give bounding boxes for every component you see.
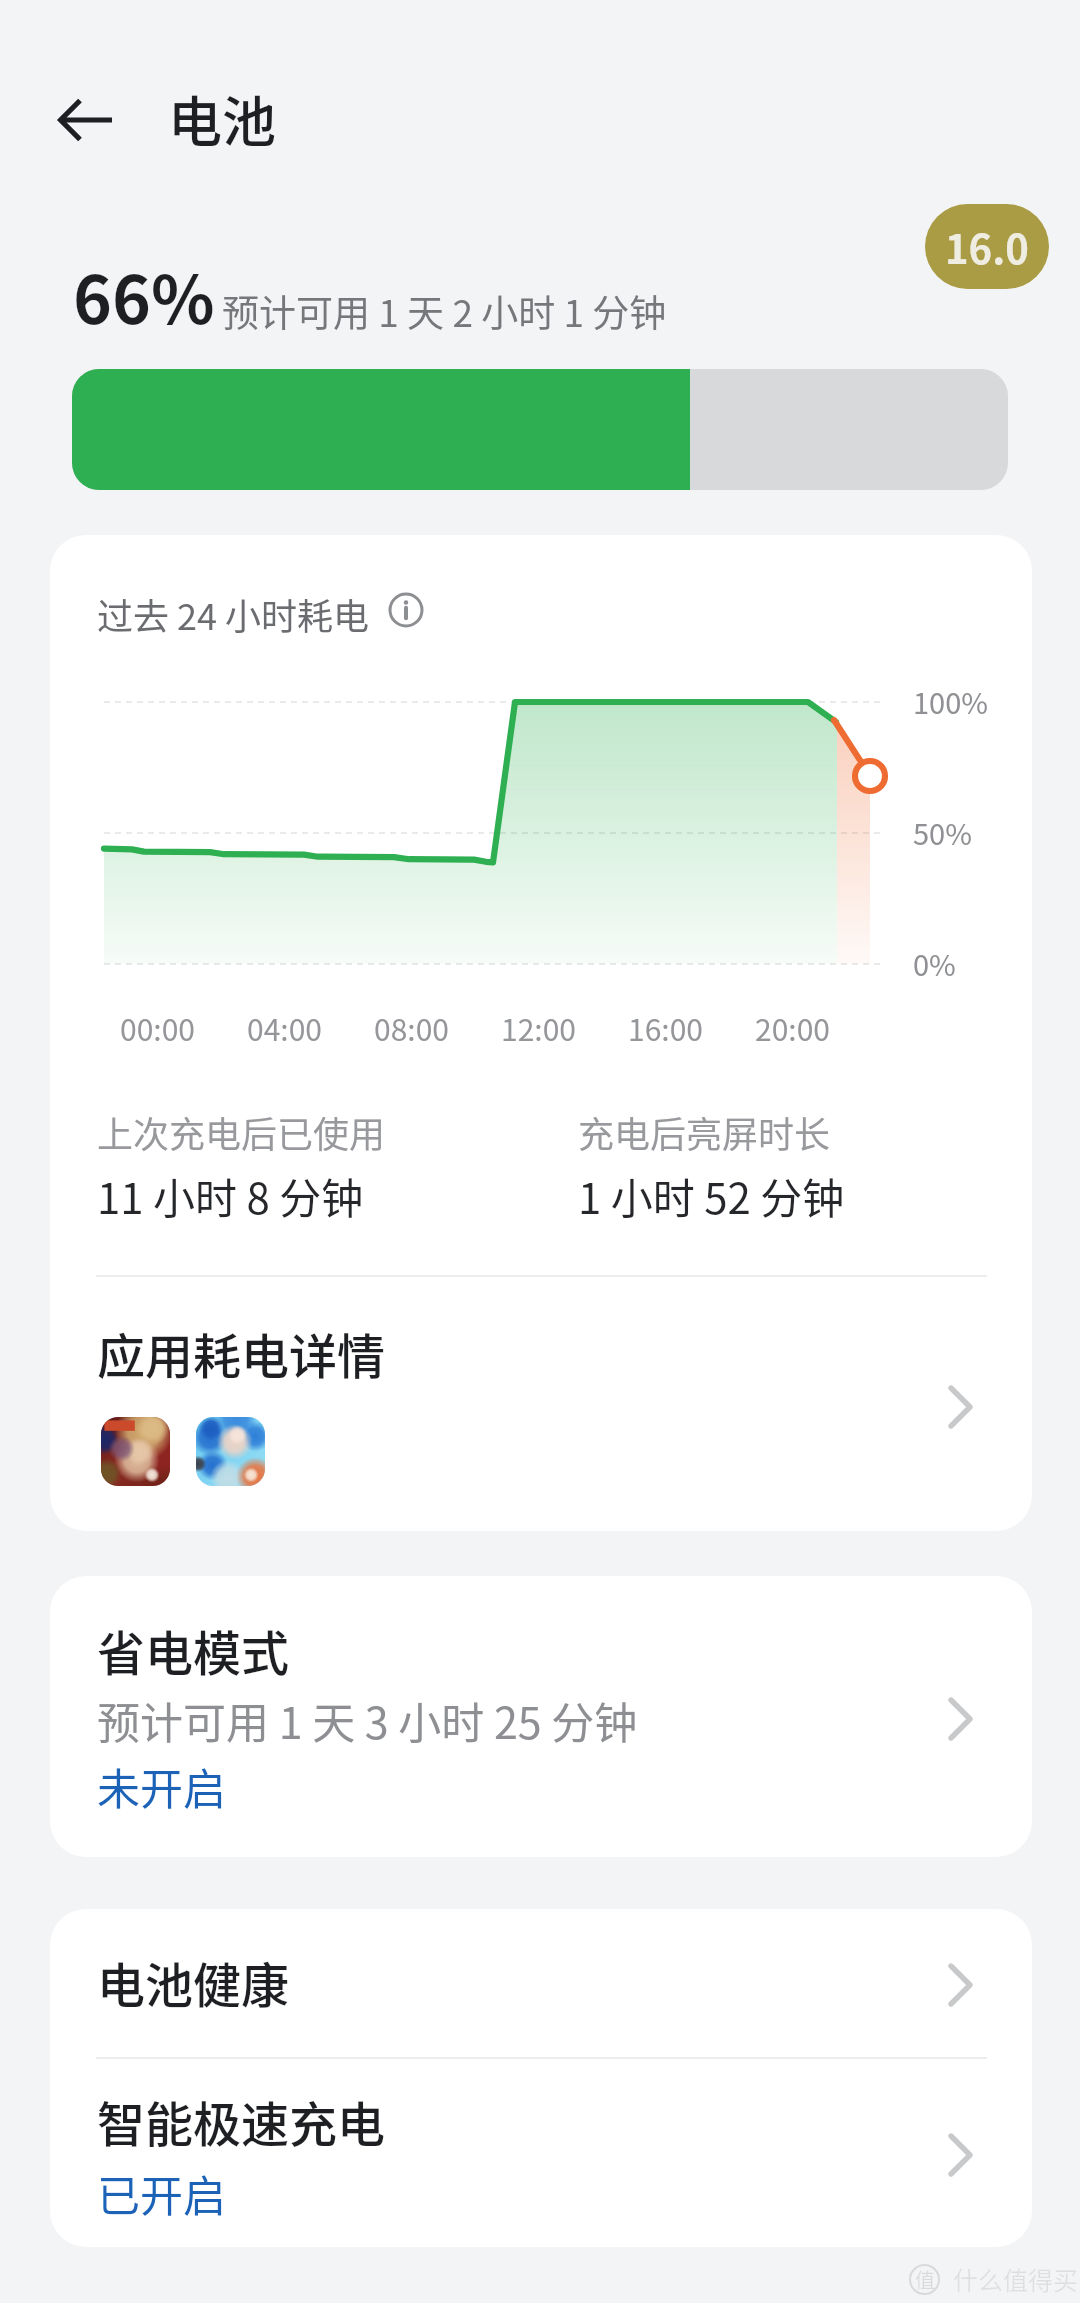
staticText: 电池 bbox=[168, 79, 276, 157]
staticText: 电池健康 bbox=[97, 1947, 290, 2017]
button[interactable]: 16.0 bbox=[925, 204, 1049, 289]
staticText: 11 小时 8 分钟 bbox=[97, 1165, 364, 1226]
staticText: 应用耗电详情 bbox=[97, 1318, 386, 1388]
staticText: 20:00 bbox=[755, 1006, 830, 1049]
staticText: 未开启 bbox=[97, 1755, 226, 1817]
staticText: 1 小时 52 分钟 bbox=[578, 1165, 845, 1226]
staticText: 0% bbox=[913, 942, 956, 984]
staticText: 00:00 bbox=[120, 1006, 195, 1049]
button[interactable]: 电池健康 bbox=[50, 1909, 1032, 2057]
staticText: 什么值得买 bbox=[953, 2261, 1079, 2297]
button[interactable]: 智能极速充电 bbox=[50, 2059, 1032, 2247]
staticText: 充电后亮屏时长 bbox=[578, 1106, 831, 1158]
staticText: 16.0 bbox=[945, 218, 1029, 276]
staticText: 50% bbox=[913, 811, 972, 853]
staticText: 100% bbox=[913, 680, 988, 722]
staticText: 省电模式 bbox=[97, 1615, 290, 1685]
staticText: 66% bbox=[73, 247, 215, 343]
button[interactable]: 省电模式 bbox=[50, 1576, 1032, 1857]
staticText: 预计可用 1 天 3 小时 25 分钟 bbox=[97, 1689, 638, 1751]
staticText: 16:00 bbox=[628, 1006, 703, 1049]
staticText: 已开启 bbox=[97, 2162, 226, 2224]
button[interactable]: Back bbox=[42, 76, 130, 164]
staticText: 上次充电后已使用 bbox=[97, 1106, 386, 1158]
button[interactable]: 应用耗电详情 bbox=[50, 1277, 1032, 1531]
staticText: 智能极速充电 bbox=[97, 2086, 386, 2156]
staticText: 12:00 bbox=[501, 1006, 576, 1049]
staticText: 08:00 bbox=[374, 1006, 449, 1049]
staticText: 过去 24 小时耗电 bbox=[97, 588, 370, 640]
staticText: 04:00 bbox=[247, 1006, 322, 1049]
staticText: 预计可用 1 天 2 小时 1 分钟 bbox=[222, 284, 667, 338]
staticText: 值 bbox=[915, 2265, 935, 2294]
